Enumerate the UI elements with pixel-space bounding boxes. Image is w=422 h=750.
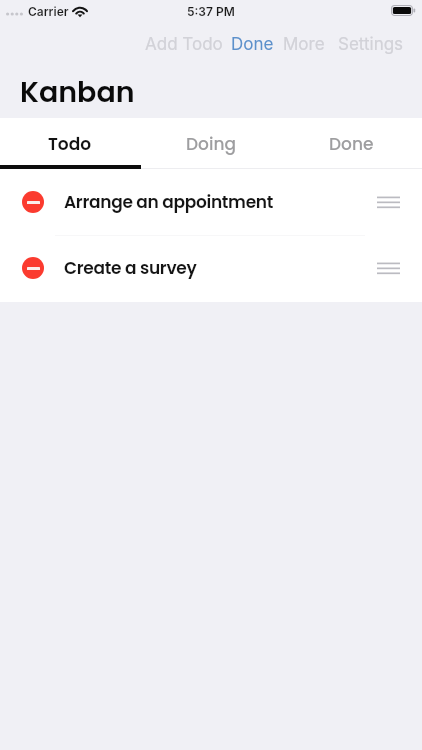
staticText: Carrier	[28, 4, 69, 19]
button[interactable]: More	[283, 34, 325, 55]
staticText: Doing	[186, 132, 236, 156]
button[interactable]: Remove task	[0, 169, 422, 235]
button[interactable]: Remove task	[22, 257, 44, 279]
button[interactable]: Add Todo	[145, 34, 223, 55]
staticText: Done	[329, 132, 374, 156]
staticText: More	[283, 34, 325, 55]
staticText: 5:37 PM	[187, 4, 235, 19]
button[interactable]: Todo	[0, 118, 140, 169]
button[interactable]: Done	[231, 34, 274, 55]
button[interactable]: Remove task	[22, 191, 44, 213]
staticText: Kanban	[20, 72, 135, 112]
button[interactable]: Reorder task	[371, 251, 405, 285]
staticText: Arrange an appointment	[64, 190, 274, 214]
button[interactable]: Doing	[140, 118, 281, 169]
button[interactable]: Settings	[338, 34, 404, 55]
staticText: Done	[231, 34, 274, 55]
button[interactable]: Done	[281, 118, 422, 169]
staticText: Create a survey	[64, 256, 197, 280]
button[interactable]: Reorder task	[371, 185, 405, 219]
button[interactable]: Remove task	[0, 235, 422, 301]
staticText: Todo	[48, 132, 92, 156]
staticText: Add Todo	[145, 34, 223, 55]
staticText: Settings	[338, 34, 404, 55]
